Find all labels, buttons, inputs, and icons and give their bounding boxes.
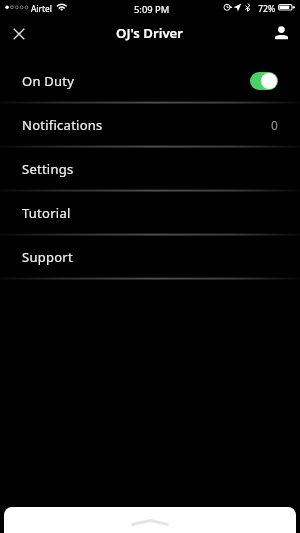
staticText: OJ's Driver (116, 24, 184, 42)
staticText: Support (22, 248, 73, 266)
button[interactable]: Support (0, 235, 300, 278)
staticText: Notifications (22, 116, 103, 134)
button[interactable]: On Duty toggle (250, 72, 278, 90)
staticText: On Duty (22, 72, 75, 90)
staticText: Settings (22, 160, 74, 178)
button[interactable]: On Duty (0, 59, 300, 102)
button[interactable]: Profile (270, 22, 294, 46)
button[interactable]: Notifications (0, 103, 300, 146)
button[interactable]: Expand panel (4, 507, 296, 533)
staticText: 5:09 PM (134, 3, 170, 16)
button[interactable]: Close (6, 21, 31, 46)
staticText: 72% (258, 3, 276, 15)
staticText: Airtel (31, 3, 52, 14)
staticText: Tutorial (22, 204, 71, 222)
button[interactable]: Tutorial (0, 191, 300, 234)
button[interactable]: Settings (0, 147, 300, 190)
staticText: 0 (271, 117, 278, 133)
